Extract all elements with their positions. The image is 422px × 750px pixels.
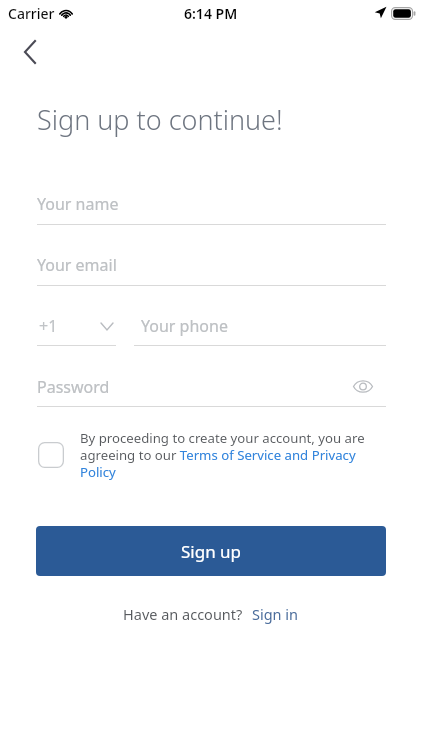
button[interactable] xyxy=(134,307,386,347)
button[interactable]: Sign up xyxy=(36,526,386,576)
staticText: By proceeding to create your account, yo… xyxy=(80,429,372,481)
staticText: Your email xyxy=(37,254,117,276)
staticText: Your phone xyxy=(141,315,228,337)
button[interactable] xyxy=(37,368,386,408)
button[interactable]: Select country code xyxy=(37,307,117,345)
staticText: Sign up to continue! xyxy=(37,101,283,138)
staticText: +1 xyxy=(39,315,58,337)
button[interactable] xyxy=(37,186,386,226)
staticText: 6:14 PM xyxy=(184,4,238,23)
staticText: Sign up xyxy=(181,540,242,563)
button[interactable]: Sign in xyxy=(252,604,299,624)
button[interactable]: Show password xyxy=(345,368,381,404)
staticText: Carrier xyxy=(8,4,55,23)
button[interactable]: By proceeding to create your account, yo… xyxy=(80,429,372,481)
button[interactable]: Back xyxy=(8,32,52,72)
staticText: Have an account? xyxy=(123,604,243,624)
button[interactable]: Accept terms checkbox xyxy=(38,442,64,468)
staticText: Your name xyxy=(37,193,119,215)
button[interactable] xyxy=(37,247,386,287)
staticText: Password xyxy=(37,376,110,398)
staticText: Sign in xyxy=(252,604,299,624)
